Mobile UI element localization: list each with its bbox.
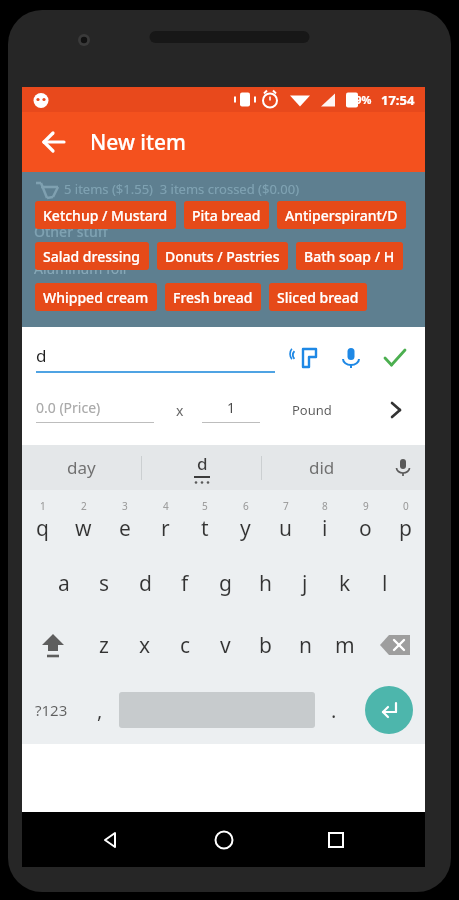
button[interactable]: 2 xyxy=(63,490,104,552)
staticText: Antiperspirant/D xyxy=(285,206,398,225)
staticText: v xyxy=(220,631,231,660)
staticText: 2 xyxy=(81,499,87,513)
button[interactable]: n xyxy=(285,614,325,676)
button[interactable]: did xyxy=(262,445,381,490)
staticText: w xyxy=(75,514,92,543)
staticText: Salad dressing xyxy=(43,247,141,266)
staticText: t xyxy=(201,514,209,543)
button[interactable]: Antiperspirant/D xyxy=(277,201,406,229)
button[interactable]: l xyxy=(365,552,405,614)
button[interactable]: v xyxy=(205,614,245,676)
button[interactable]: , xyxy=(81,676,119,744)
staticText: Donuts / Pastries xyxy=(165,247,280,266)
button[interactable]: d xyxy=(142,445,261,490)
button[interactable]: j xyxy=(285,552,325,614)
staticText: Bath soap / H xyxy=(304,247,395,266)
button[interactable]: b xyxy=(245,614,285,676)
button[interactable]: day xyxy=(22,445,141,490)
staticText: Pita bread xyxy=(192,206,261,225)
button[interactable]: Donuts / Pastries xyxy=(157,242,288,270)
staticText: New item xyxy=(90,128,186,157)
staticText: h xyxy=(259,569,272,598)
button[interactable]: z xyxy=(83,614,124,676)
staticText: f xyxy=(181,569,189,598)
staticText: day xyxy=(67,456,96,479)
button[interactable]: More options xyxy=(381,395,411,425)
button[interactable]: x xyxy=(124,614,165,676)
staticText: u xyxy=(279,514,292,543)
button[interactable]: 9 xyxy=(345,490,385,552)
staticText: 4 xyxy=(163,499,169,513)
staticText: 0.0 (Price) xyxy=(36,398,101,417)
staticText: l xyxy=(382,569,388,598)
staticText: r xyxy=(161,514,170,543)
staticText: 5 xyxy=(202,499,208,513)
button[interactable]: m xyxy=(325,614,365,676)
staticText: m xyxy=(335,631,355,660)
staticText: y xyxy=(240,514,251,543)
staticText: d xyxy=(36,344,47,367)
button[interactable]: Home xyxy=(200,816,248,864)
button[interactable]: 4 xyxy=(145,490,185,552)
staticText: . xyxy=(331,697,337,724)
button[interactable]: c xyxy=(165,614,205,676)
button[interactable]: 6 xyxy=(225,490,265,552)
staticText: g xyxy=(219,569,232,598)
staticText: d xyxy=(197,452,208,475)
button[interactable]: Backspace xyxy=(365,614,425,676)
button[interactable]: Shift xyxy=(22,614,83,676)
button[interactable]: k xyxy=(325,552,365,614)
staticText: a xyxy=(58,569,70,598)
button[interactable]: Bath soap / H xyxy=(296,242,403,270)
button[interactable]: Pound xyxy=(288,397,336,423)
staticText: k xyxy=(339,569,351,598)
button[interactable]: Confirm xyxy=(377,340,413,376)
button[interactable]: Scan barcode xyxy=(289,340,325,376)
button[interactable]: 3 xyxy=(104,490,145,552)
button[interactable]: Back xyxy=(32,120,76,164)
button[interactable]: Back xyxy=(87,816,135,864)
button[interactable]: Salad dressing xyxy=(35,242,149,270)
button[interactable]: 0 xyxy=(385,490,425,552)
button[interactable]: 1 xyxy=(22,490,63,552)
button[interactable]: Fresh bread xyxy=(165,283,261,311)
button[interactable]: 7 xyxy=(265,490,305,552)
button[interactable]: Sliced bread xyxy=(269,283,367,311)
button[interactable]: h xyxy=(245,552,285,614)
staticText: Ketchup / Mustard xyxy=(43,206,168,225)
button[interactable]: s xyxy=(84,552,125,614)
staticText: j xyxy=(302,569,308,598)
button[interactable]: 5 xyxy=(185,490,225,552)
staticText: 8 xyxy=(322,499,328,513)
button[interactable]: a xyxy=(43,552,84,614)
staticText: Whipped cream xyxy=(43,288,149,307)
button[interactable]: Voice input xyxy=(333,340,369,376)
staticText: o xyxy=(359,514,372,543)
staticText: Pound xyxy=(292,401,332,419)
button[interactable]: Recents xyxy=(312,816,360,864)
staticText: n xyxy=(299,631,312,660)
button[interactable]: Whipped cream xyxy=(35,283,157,311)
staticText: b xyxy=(259,631,272,660)
button[interactable]: d xyxy=(125,552,165,614)
staticText: 9 xyxy=(363,499,369,513)
button[interactable]: Ketchup / Mustard xyxy=(35,201,176,229)
button[interactable]: Pita bread xyxy=(184,201,269,229)
staticText: 6 xyxy=(243,499,249,513)
staticText: 0 xyxy=(403,499,409,513)
staticText: q xyxy=(36,514,49,543)
staticText: i xyxy=(322,514,328,543)
button[interactable]: Voice typing xyxy=(381,445,425,490)
button[interactable]: f xyxy=(165,552,205,614)
staticText: Aluminum foil xyxy=(34,259,127,278)
staticText: 17:54 xyxy=(381,91,415,109)
staticText: 1 xyxy=(40,499,46,513)
button[interactable]: Enter xyxy=(365,686,413,734)
button[interactable]: . xyxy=(315,676,353,744)
staticText: 3 xyxy=(122,499,128,513)
button[interactable]: g xyxy=(205,552,245,614)
button[interactable]: 8 xyxy=(305,490,345,552)
staticText: 7 xyxy=(283,499,289,513)
button[interactable]: ?123 xyxy=(22,676,81,744)
